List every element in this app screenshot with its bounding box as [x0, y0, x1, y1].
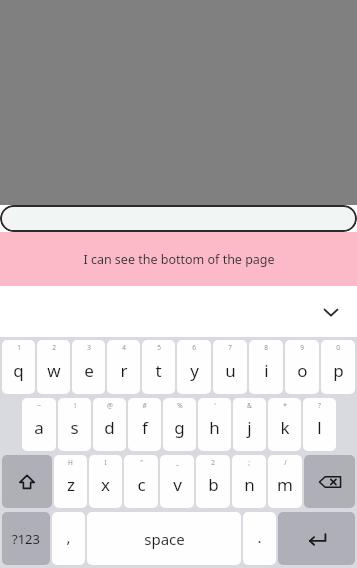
staticText: 2 — [211, 458, 215, 467]
staticText: ; — [248, 458, 250, 467]
button[interactable]: 6 — [177, 340, 211, 394]
staticText: # — [142, 401, 147, 410]
staticText: n — [244, 473, 255, 496]
button[interactable]: @ — [93, 398, 126, 451]
staticText: " — [140, 458, 143, 467]
staticText: 9 — [300, 343, 304, 352]
staticText: 3 — [87, 343, 91, 352]
staticText: I can see the bottom of the page — [83, 251, 275, 268]
button[interactable]: * — [268, 398, 301, 451]
staticText: y — [190, 359, 199, 382]
staticText: d — [104, 416, 115, 439]
staticText: b — [208, 473, 219, 496]
staticText: x — [101, 473, 110, 496]
staticText: a — [34, 416, 44, 439]
button[interactable]: space — [87, 512, 241, 565]
button[interactable]: ? — [303, 398, 336, 451]
staticText: k — [280, 416, 290, 439]
staticText: 0 — [336, 343, 340, 352]
staticText: ? — [318, 401, 321, 410]
staticText: I — [104, 458, 107, 467]
button[interactable]: % — [163, 398, 196, 451]
staticText: r — [120, 359, 128, 382]
button[interactable]: 1 — [2, 340, 35, 394]
staticText: * — [283, 401, 287, 410]
button[interactable]: 2 — [37, 340, 70, 394]
button[interactable]: 0 — [321, 340, 355, 394]
button[interactable]: ~ — [22, 398, 56, 451]
staticText: ! — [74, 401, 76, 410]
button[interactable]: & — [233, 398, 266, 451]
staticText: 2 — [52, 343, 56, 352]
staticText: c — [137, 473, 146, 496]
button[interactable]: 3 — [72, 340, 105, 394]
staticText: o — [297, 359, 308, 382]
button[interactable]: 2 — [196, 455, 230, 508]
button[interactable]: I — [89, 455, 122, 508]
staticText: f — [142, 416, 148, 439]
button[interactable]: ' — [198, 398, 231, 451]
staticText: H — [68, 458, 73, 467]
button[interactable]: ?123 — [2, 512, 50, 565]
staticText: & — [247, 401, 252, 410]
staticText: / — [284, 458, 287, 467]
staticText: @ — [107, 401, 113, 410]
button[interactable]: 5 — [142, 340, 175, 394]
button[interactable]: Shift — [2, 455, 52, 508]
button[interactable]: 8 — [249, 340, 283, 394]
staticText: 7 — [228, 343, 232, 352]
staticText: i — [264, 359, 269, 382]
button[interactable]: Collapse — [313, 294, 349, 330]
button[interactable]: # — [128, 398, 161, 451]
staticText: space — [144, 529, 185, 549]
button[interactable]: 4 — [107, 340, 140, 394]
button[interactable]: _ — [160, 455, 194, 508]
staticText: , — [66, 527, 71, 547]
staticText: v — [173, 473, 182, 496]
staticText: h — [209, 416, 220, 439]
staticText: % — [177, 401, 183, 410]
button[interactable]: ! — [58, 398, 91, 451]
staticText: ?123 — [12, 530, 40, 548]
button[interactable]: 9 — [285, 340, 319, 394]
button[interactable]: / — [268, 455, 302, 508]
button[interactable]: H — [54, 455, 87, 508]
staticText: g — [174, 416, 185, 439]
staticText: . — [257, 527, 262, 547]
staticText: u — [225, 359, 236, 382]
staticText: _ — [176, 458, 179, 467]
staticText: q — [13, 359, 24, 382]
staticText: 1 — [17, 343, 21, 352]
staticText: m — [277, 473, 293, 496]
staticText: 4 — [122, 343, 126, 352]
button[interactable]: " — [124, 455, 158, 508]
staticText: l — [317, 416, 322, 439]
staticText: t — [155, 359, 162, 382]
button[interactable]: ; — [232, 455, 266, 508]
staticText: e — [84, 359, 94, 382]
staticText: s — [70, 416, 79, 439]
button[interactable]: 7 — [213, 340, 247, 394]
button[interactable]: Enter — [278, 512, 355, 565]
staticText: j — [247, 416, 252, 439]
button[interactable]: Backspace — [304, 455, 355, 508]
staticText: 6 — [192, 343, 196, 352]
staticText: z — [67, 473, 75, 496]
staticText: p — [333, 359, 344, 382]
staticText: ~ — [37, 401, 41, 410]
button[interactable]: . — [243, 512, 276, 565]
button[interactable]: , — [52, 512, 85, 565]
button[interactable] — [0, 205, 357, 232]
staticText: 5 — [157, 343, 161, 352]
staticText: 8 — [264, 343, 268, 352]
staticText: w — [47, 359, 61, 382]
staticText: ' — [214, 401, 216, 410]
